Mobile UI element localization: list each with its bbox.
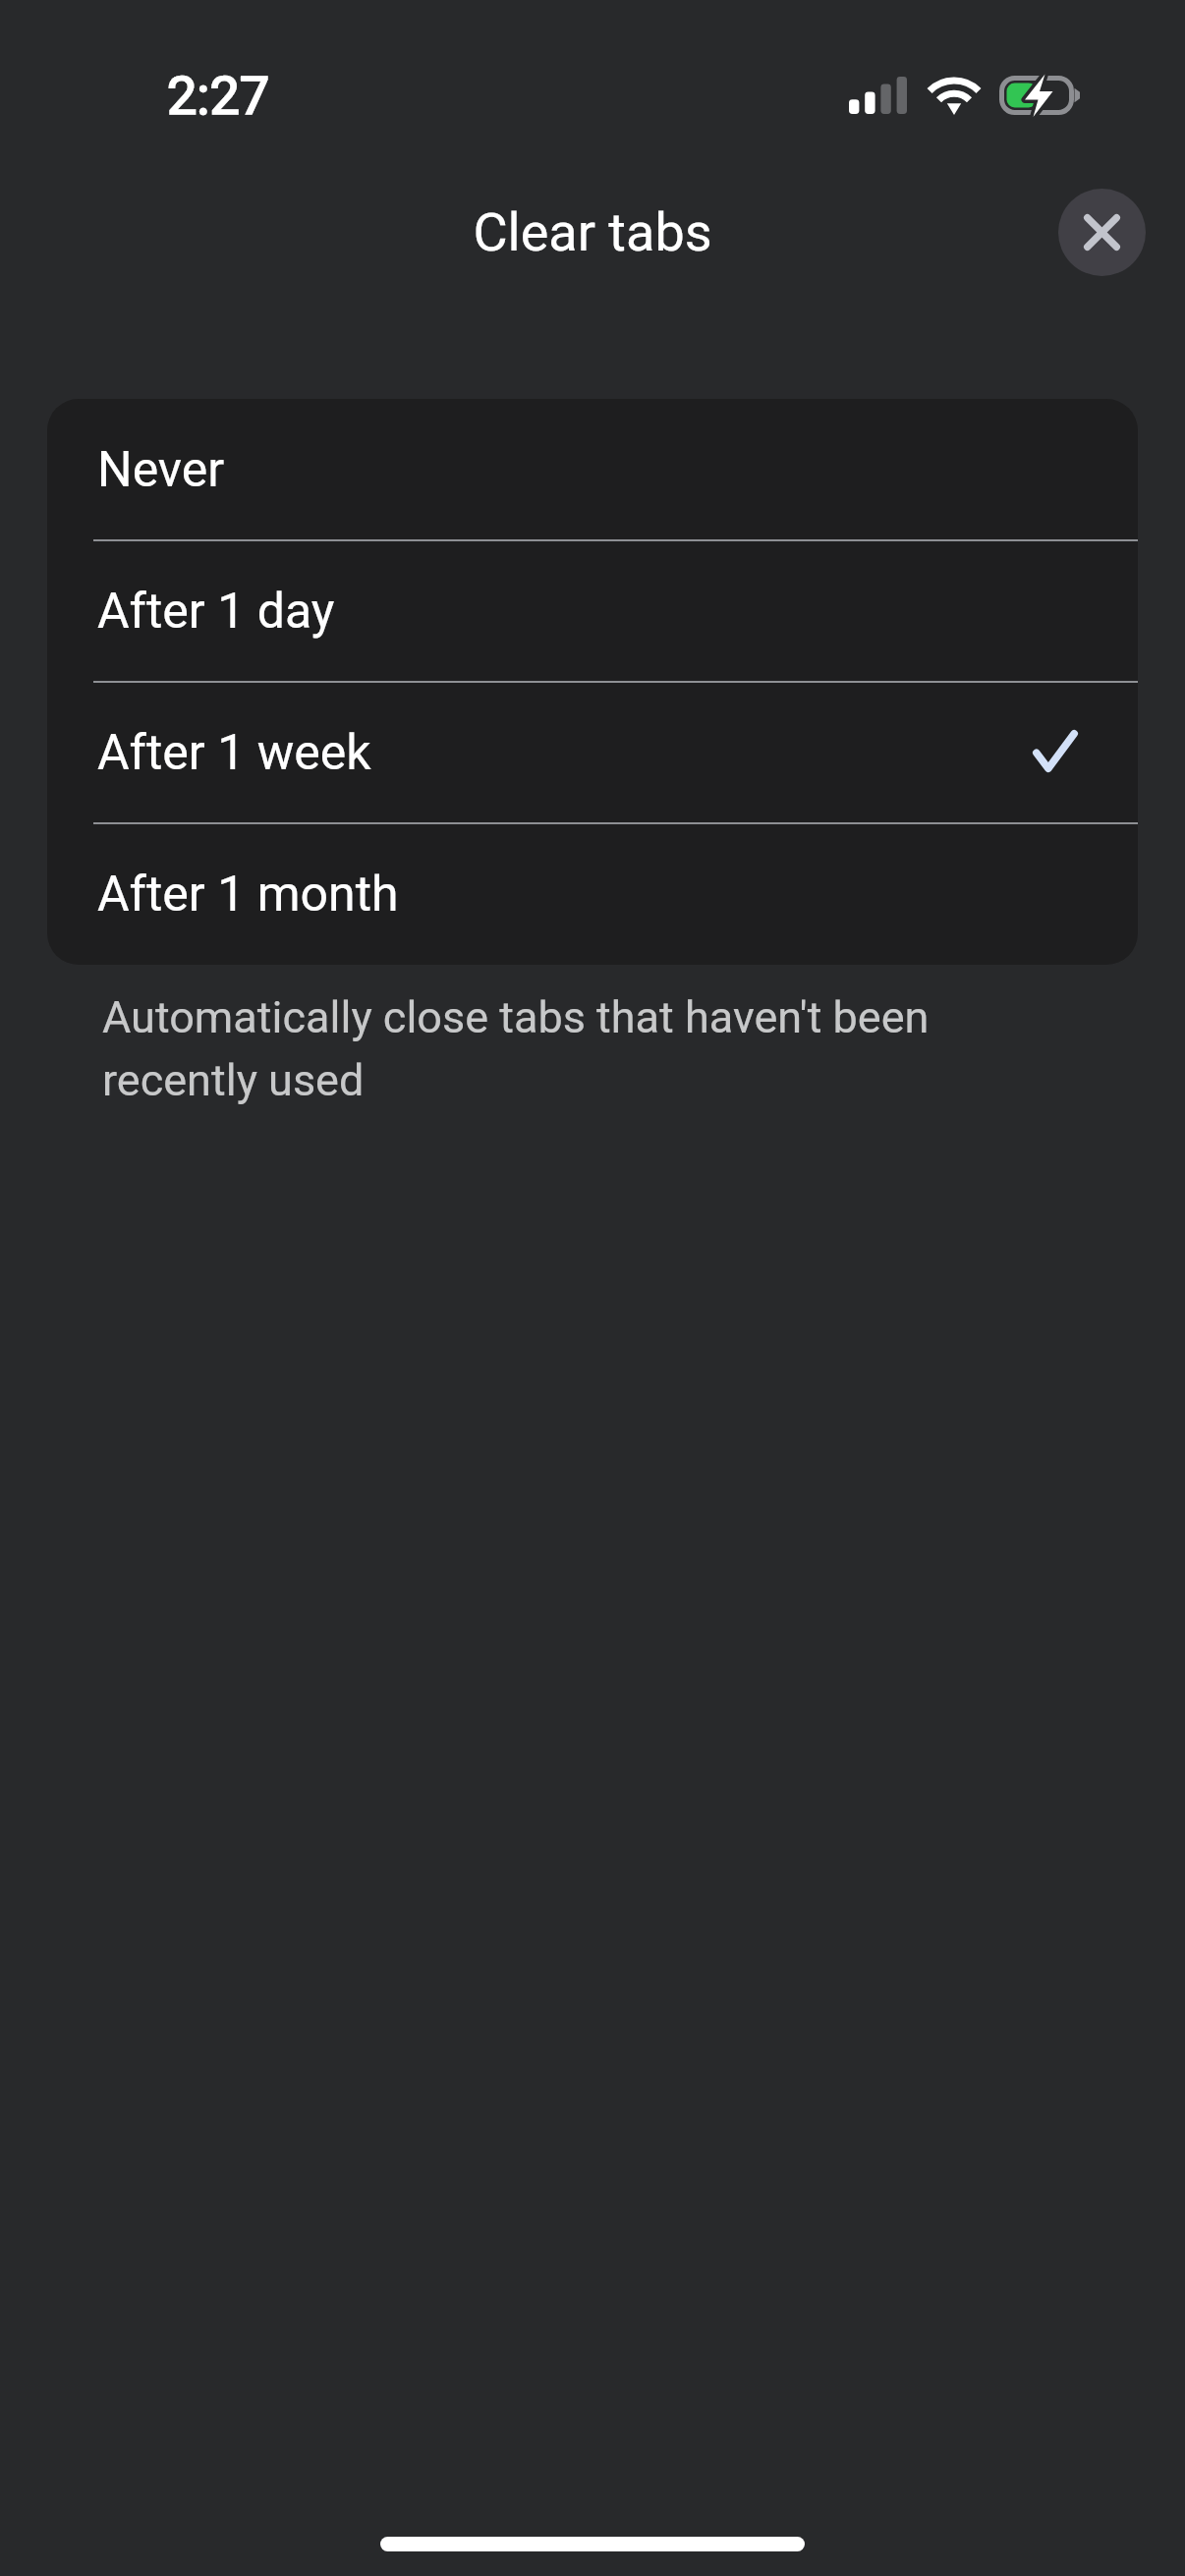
button[interactable]: Never (47, 399, 1138, 540)
staticText: Clear tabs (473, 201, 712, 263)
staticText: Never (97, 441, 225, 499)
button[interactable]: After 1 month (47, 823, 1138, 965)
staticText: Automatically close tabs that haven't be… (102, 991, 930, 1106)
button[interactable]: After 1 week (47, 682, 1138, 823)
button[interactable]: Close (1058, 189, 1146, 276)
staticText: After 1 month (97, 866, 399, 924)
staticText: 2:27 (167, 65, 270, 127)
staticText: After 1 week (97, 724, 371, 782)
button[interactable]: After 1 day (47, 540, 1138, 682)
staticText: After 1 day (97, 583, 335, 641)
